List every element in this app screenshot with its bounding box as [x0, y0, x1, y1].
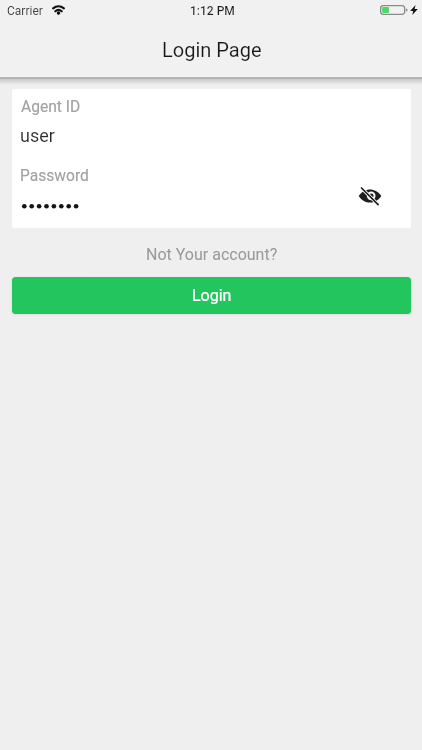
button[interactable]: Not Your account? — [142, 243, 282, 265]
staticText: Not Your account? — [146, 245, 278, 264]
staticText: Password — [20, 167, 89, 185]
staticText: Login Page — [162, 38, 262, 61]
staticText: user — [20, 125, 55, 146]
staticText: 1:12 PM — [190, 4, 235, 18]
button[interactable]: Show password — [348, 174, 392, 218]
staticText: Carrier — [7, 4, 43, 18]
staticText: Agent ID — [21, 98, 81, 116]
button[interactable]: Login — [12, 277, 411, 314]
staticText: Login — [192, 286, 232, 305]
